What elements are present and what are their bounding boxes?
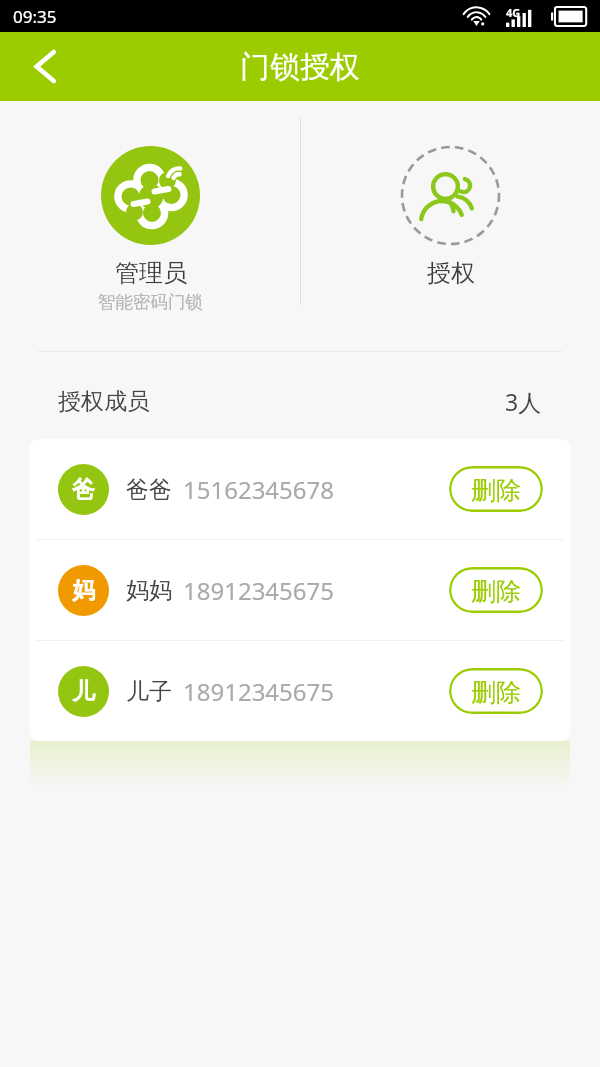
button[interactable]: 妈 bbox=[30, 540, 570, 640]
button[interactable]: 删除 bbox=[449, 668, 543, 714]
button[interactable]: 儿 bbox=[30, 641, 570, 741]
button[interactable]: 管理员 bbox=[98, 146, 203, 313]
staticText: 删除 bbox=[471, 475, 521, 506]
staticText: 18912345675 bbox=[183, 574, 335, 607]
staticText: 妈妈 bbox=[126, 576, 172, 605]
staticText: 15162345678 bbox=[183, 473, 335, 506]
staticText: 爸 bbox=[72, 475, 95, 504]
staticText: 18912345675 bbox=[183, 675, 335, 708]
button[interactable]: 授权 bbox=[401, 146, 500, 288]
staticText: 授权 bbox=[427, 258, 475, 288]
button[interactable]: 删除 bbox=[449, 567, 543, 613]
staticText: 爸爸 bbox=[126, 475, 172, 504]
staticText: 3人 bbox=[505, 386, 542, 417]
staticText: 门锁授权 bbox=[240, 48, 360, 86]
staticText: 09:35 bbox=[13, 5, 57, 28]
staticText: 管理员 bbox=[115, 258, 187, 288]
staticText: 妈 bbox=[72, 576, 95, 605]
staticText: 删除 bbox=[471, 576, 521, 607]
button[interactable]: Back bbox=[0, 32, 90, 101]
staticText: 授权成员 bbox=[58, 387, 150, 416]
staticText: 儿子 bbox=[126, 677, 172, 706]
button[interactable]: 爸 bbox=[30, 439, 570, 539]
staticText: 删除 bbox=[471, 677, 521, 708]
button[interactable]: 删除 bbox=[449, 466, 543, 512]
staticText: 智能密码门锁 bbox=[98, 291, 203, 313]
staticText: 4G bbox=[506, 5, 521, 20]
staticText: 儿 bbox=[72, 677, 95, 706]
